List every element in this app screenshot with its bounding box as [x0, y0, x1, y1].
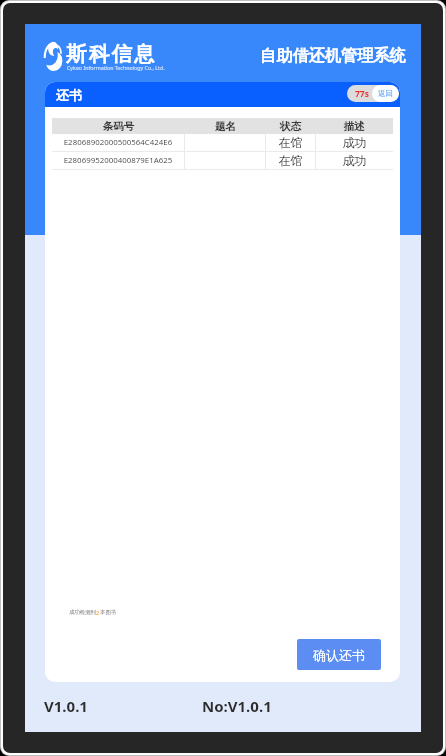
staticText: 本图书: [100, 609, 117, 616]
staticText: E28068902000500564C424E6: [52, 137, 184, 148]
staticText: 条码号: [52, 120, 185, 133]
staticText: 描述: [315, 120, 393, 133]
staticText: 2: [96, 609, 100, 616]
staticText: 还书: [56, 87, 82, 103]
staticText: 在馆: [266, 153, 315, 168]
staticText: 成功: [316, 135, 393, 150]
staticText: 斯科信息: [66, 41, 157, 67]
staticText: Cykeo Information Technology Co., Ltd.: [67, 64, 165, 71]
staticText: 自助借还机管理系统: [260, 45, 406, 65]
staticText: 77s: [355, 88, 369, 100]
staticText: No:V1.0.1: [202, 696, 272, 716]
staticText: 确认还书: [313, 647, 365, 663]
staticText: 题名: [185, 120, 266, 133]
staticText: 返回: [378, 89, 393, 98]
staticText: 成功检测到: [69, 609, 96, 616]
staticText: 在馆: [266, 135, 315, 150]
staticText: 成功: [316, 153, 393, 168]
staticText: V1.0.1: [44, 696, 88, 716]
button[interactable]: 确认还书: [297, 639, 381, 670]
staticText: E28069952000400879E1A625: [52, 155, 184, 166]
button[interactable]: 返回: [372, 85, 399, 102]
staticText: 状态: [266, 120, 315, 133]
